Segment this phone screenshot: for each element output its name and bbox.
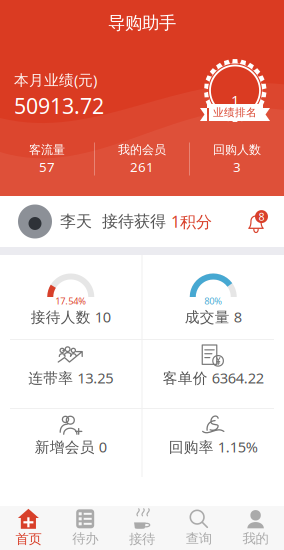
staticText: 80%: [204, 295, 222, 307]
staticText: 首页: [15, 531, 41, 547]
staticText: 1积分: [171, 211, 212, 232]
staticText: 261: [130, 158, 154, 176]
staticText: 1: [231, 90, 239, 110]
staticText: 回购人数: [213, 142, 261, 157]
staticText: 回购率 1.15%: [169, 437, 258, 456]
staticText: 待办: [72, 530, 98, 547]
button[interactable]: 80%: [142, 255, 284, 339]
button[interactable]: 接待: [114, 506, 170, 550]
staticText: 8: [258, 209, 264, 224]
staticText: 导购助手: [108, 12, 176, 34]
staticText: 李天 接待获得: [60, 212, 171, 231]
staticText: 业绩排名: [213, 106, 257, 119]
staticText: 新增会员 0: [35, 437, 107, 456]
staticText: 查询: [186, 530, 212, 547]
staticText: 客流量: [29, 142, 65, 157]
staticText: 50913.72: [14, 91, 104, 120]
staticText: 17.54%: [55, 295, 86, 307]
button[interactable]: 新增会员 0: [0, 409, 141, 477]
button[interactable]: 17.54%: [0, 255, 141, 339]
button[interactable]: 连带率 13.25: [0, 340, 141, 408]
staticText: 接待: [129, 531, 155, 547]
staticText: 3: [233, 158, 241, 176]
staticText: 我的: [243, 530, 269, 547]
staticText: 连带率 13.25: [28, 368, 113, 387]
button[interactable]: 回购率 1.15%: [142, 409, 284, 477]
button[interactable]: 首页: [0, 506, 57, 550]
button[interactable]: 我的: [227, 506, 284, 550]
button[interactable]: 待办: [57, 506, 114, 550]
button[interactable]: 李天 接待获得: [0, 196, 284, 247]
staticText: 接待人数 10: [31, 307, 111, 326]
staticText: 我的会员: [118, 142, 166, 157]
staticText: 成交量 8: [185, 307, 242, 326]
staticText: 本月业绩(元): [14, 70, 97, 89]
button[interactable]: 客单价 6364.22: [142, 340, 284, 408]
staticText: 客单价 6364.22: [163, 368, 264, 387]
staticText: 57: [39, 158, 55, 176]
button[interactable]: 查询: [170, 506, 227, 550]
